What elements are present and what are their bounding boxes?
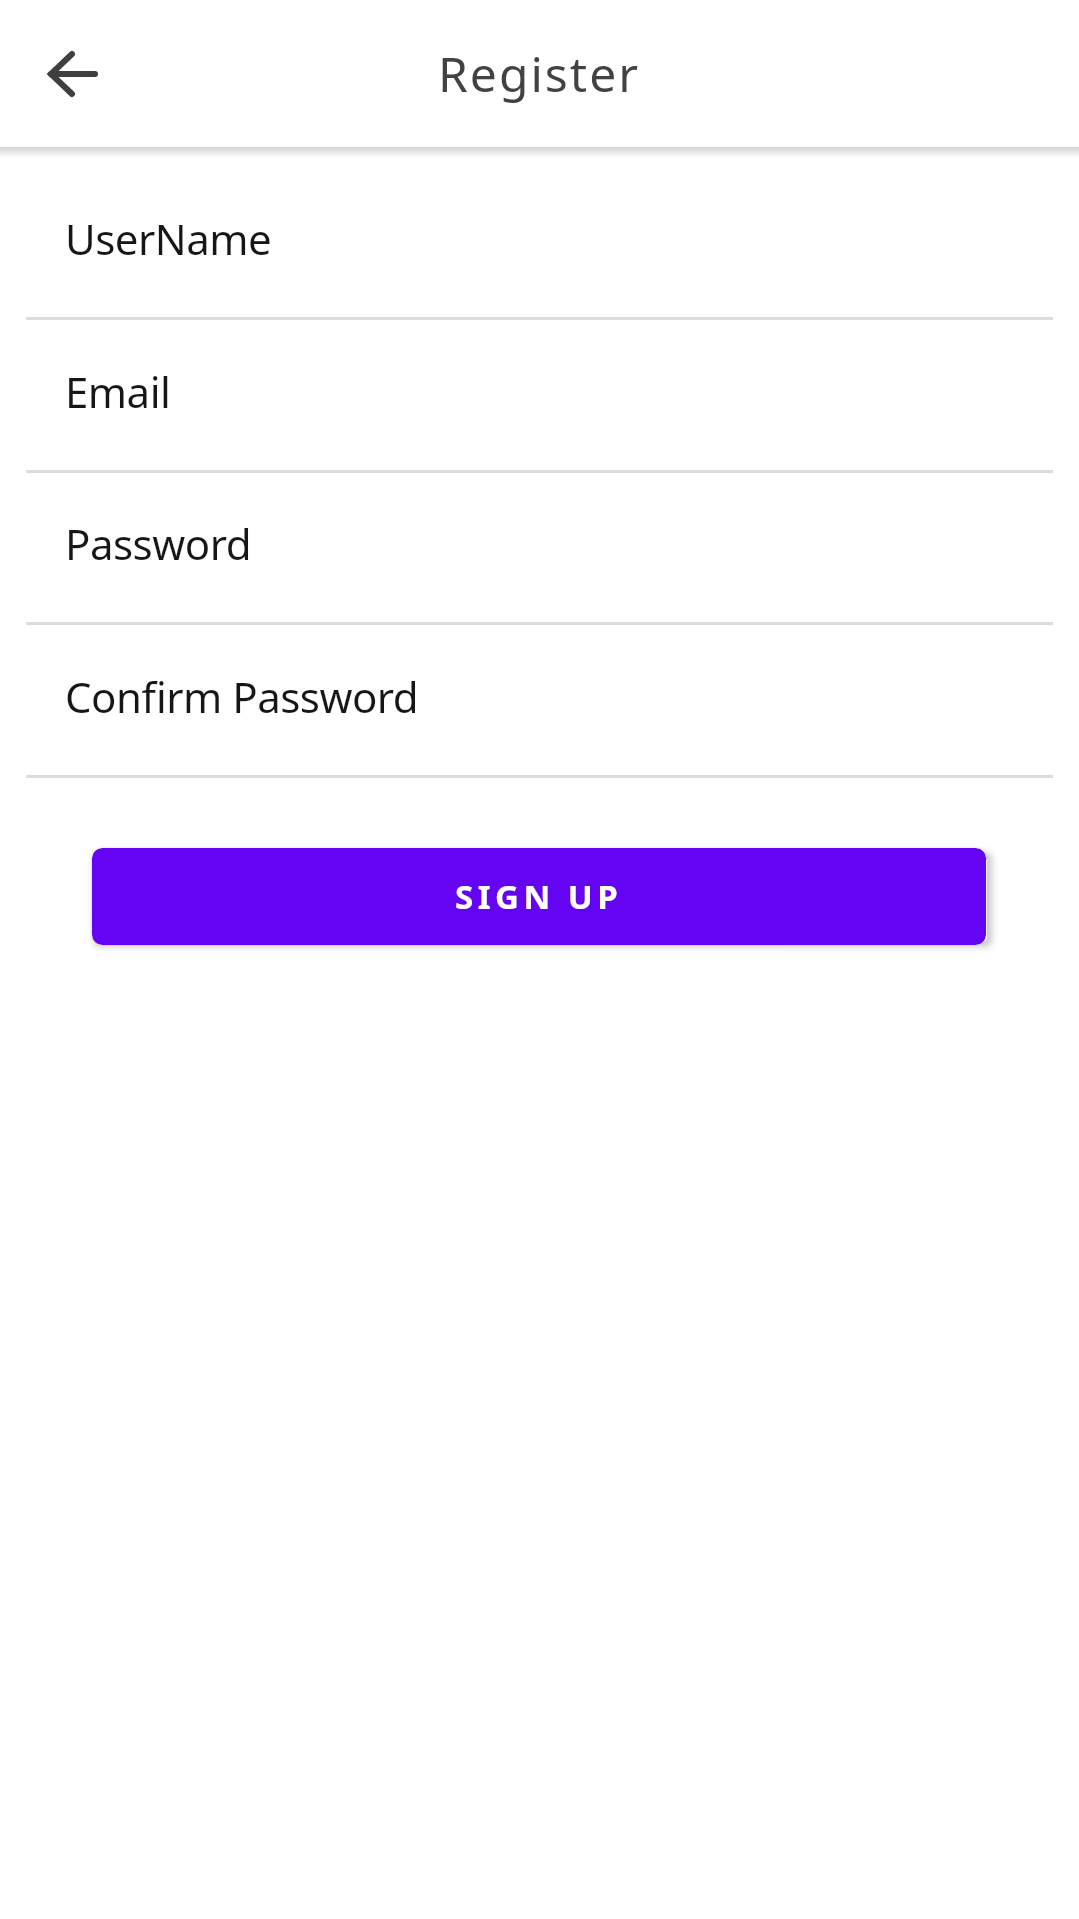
button[interactable]: Confirm Password (26, 625, 1053, 778)
staticText: Password (65, 515, 251, 572)
staticText: UserName (65, 210, 272, 267)
staticText: Register (438, 41, 641, 106)
staticText: SIGN UP (455, 874, 623, 919)
staticText: Email (65, 363, 171, 420)
button[interactable] (24, 26, 119, 121)
button[interactable]: SIGN UP (92, 848, 986, 945)
button[interactable]: Email (26, 320, 1053, 473)
button[interactable]: Password (26, 472, 1053, 625)
staticText: Confirm Password (65, 668, 419, 725)
button[interactable]: UserName (26, 167, 1053, 320)
